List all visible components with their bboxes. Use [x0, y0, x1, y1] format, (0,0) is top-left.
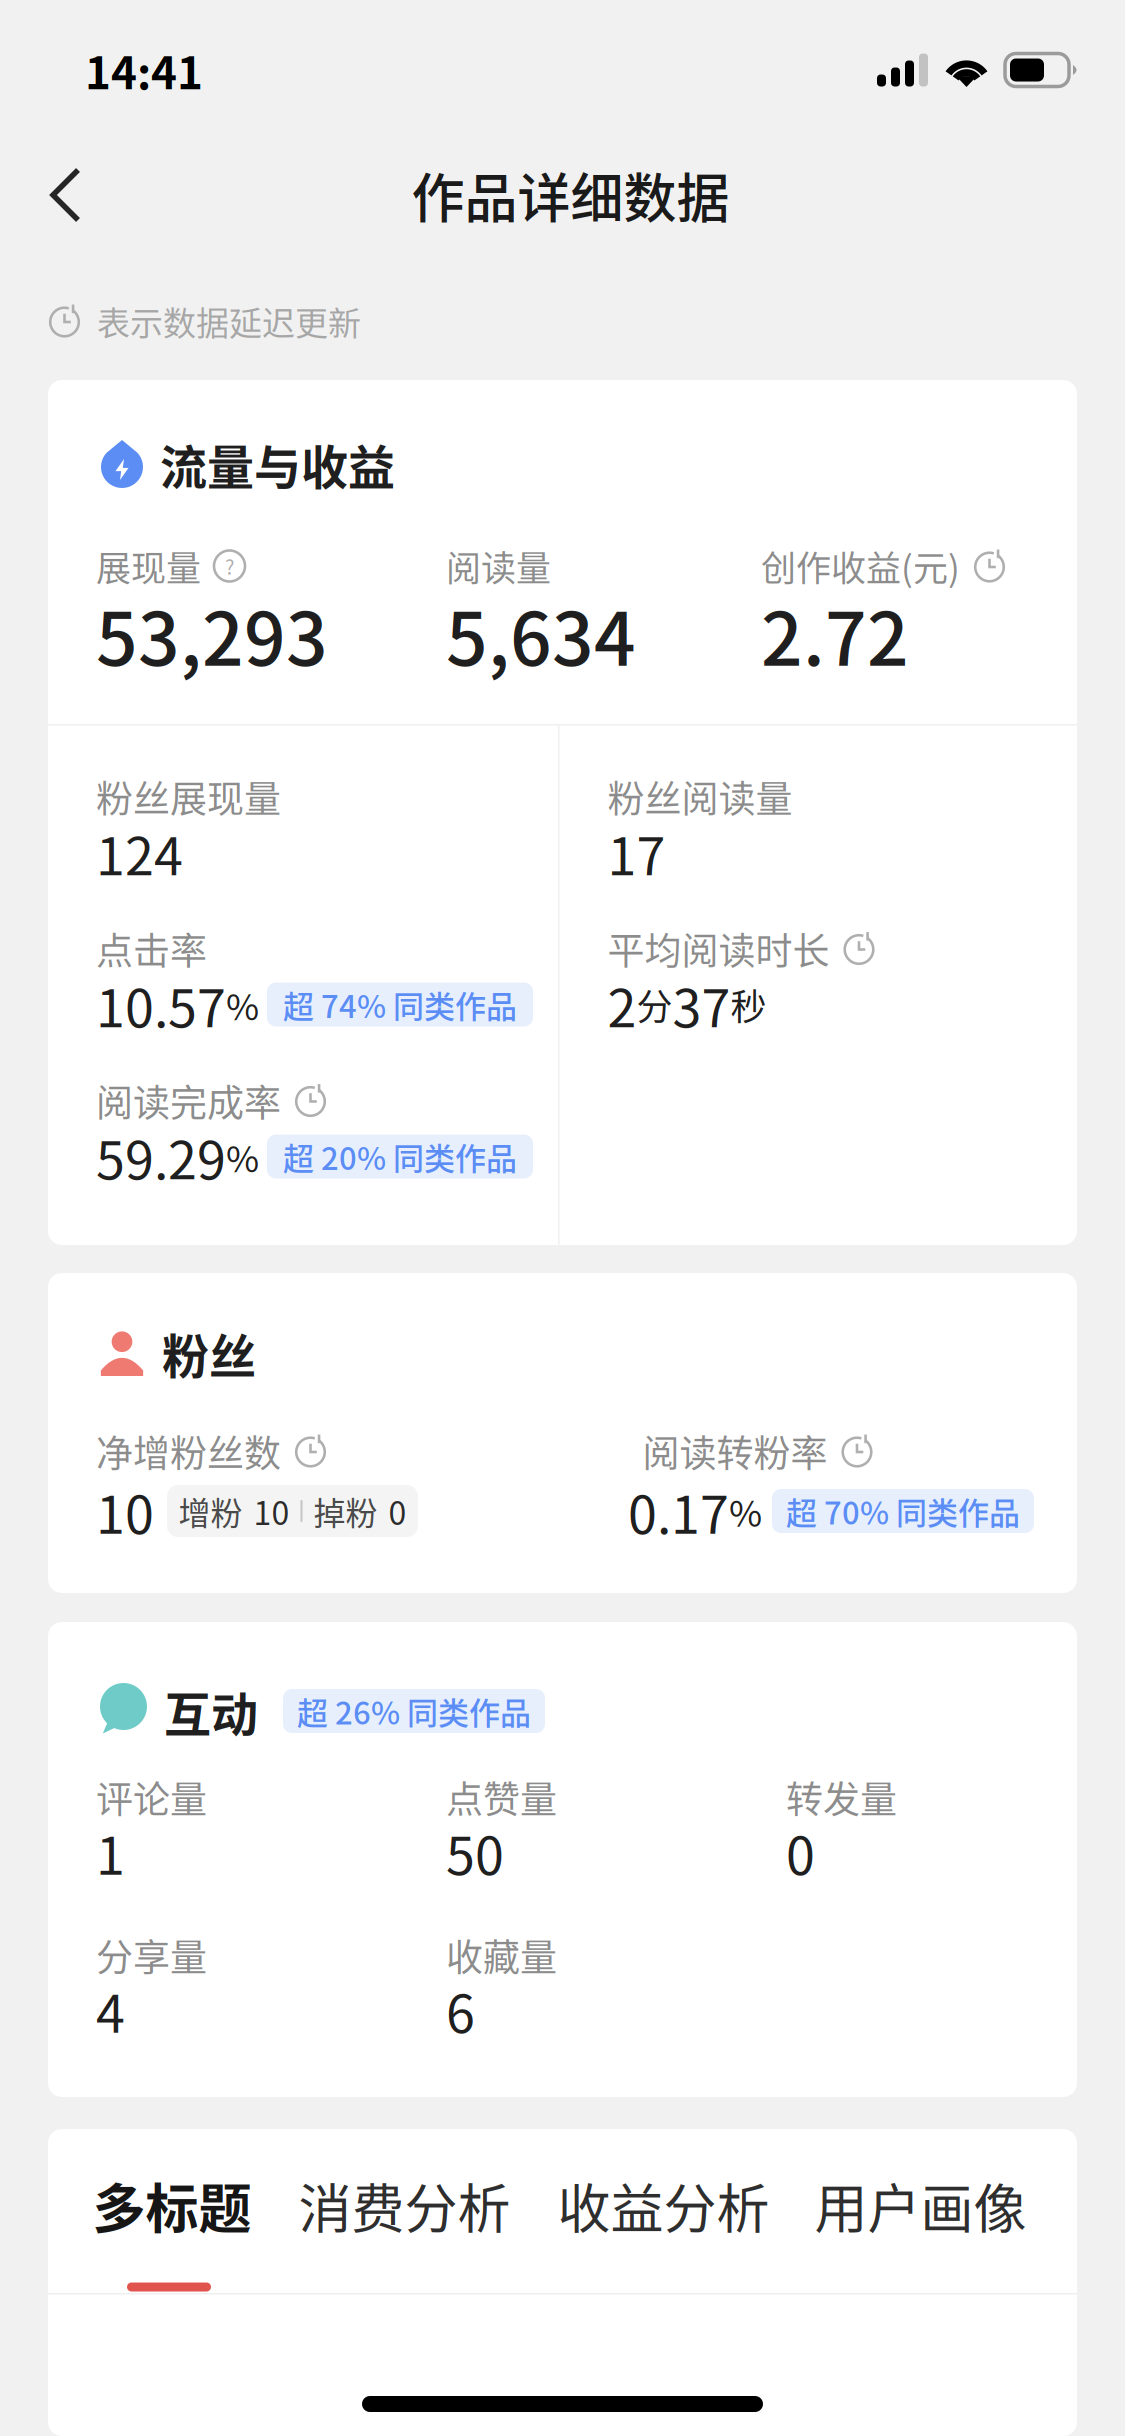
staticText: 10: [253, 1488, 289, 1534]
staticText: 掉粉: [313, 1488, 377, 1534]
staticText: 用户画像: [814, 2167, 1026, 2244]
staticText: 粉丝: [162, 1319, 256, 1387]
staticText: 0.17: [628, 1473, 729, 1549]
staticText: 表示数据延迟更新: [97, 297, 361, 345]
staticText: 秒: [730, 978, 766, 1030]
staticText: 10.57: [96, 967, 226, 1042]
staticText: 转发量: [786, 1770, 897, 1824]
staticText: 作品详细数据: [411, 157, 729, 233]
staticText: 53,293: [96, 581, 328, 687]
staticText: 创作收益(元): [761, 541, 960, 591]
staticText: 收益分析: [557, 2167, 769, 2244]
staticText: 37: [672, 967, 730, 1042]
button[interactable]: About 展现量: [214, 550, 245, 581]
staticText: 收藏量: [446, 1928, 557, 1982]
button[interactable]: 消费分析: [297, 2173, 556, 2293]
staticText: 点击率: [96, 922, 207, 975]
staticText: 展现量: [96, 541, 201, 591]
staticText: 50: [446, 1814, 504, 1890]
staticText: 124: [96, 815, 183, 890]
button[interactable]: Back: [16, 142, 115, 248]
staticText: 2.72: [761, 581, 909, 687]
staticText: 超 20% 同类作品: [283, 1134, 517, 1179]
staticText: 增粉: [178, 1488, 242, 1534]
button[interactable]: 收益分析: [556, 2173, 813, 2293]
staticText: 阅读量: [446, 541, 551, 591]
button[interactable]: 用户画像: [813, 2173, 1070, 2293]
staticText: 互动: [164, 1677, 258, 1745]
staticText: 59.29: [96, 1119, 226, 1194]
staticText: 超 74% 同类作品: [283, 982, 517, 1027]
button[interactable]: 多标题: [91, 2173, 297, 2293]
staticText: 多标题: [92, 2167, 251, 2244]
staticText: %: [226, 978, 259, 1030]
staticText: 平均阅读时长: [607, 922, 829, 975]
staticText: 超 70% 同类作品: [786, 1489, 1020, 1533]
staticText: 点赞量: [446, 1770, 557, 1824]
staticText: %: [226, 1130, 259, 1182]
staticText: 净增粉丝数: [96, 1424, 281, 1478]
staticText: %: [729, 1485, 762, 1537]
staticText: 1: [96, 1814, 125, 1890]
staticText: 阅读转粉率: [642, 1424, 827, 1478]
staticText: 流量与收益: [160, 430, 395, 498]
staticText: 6: [446, 1972, 475, 2048]
staticText: 4: [96, 1972, 125, 2048]
staticText: 2: [607, 967, 636, 1042]
staticText: 0: [786, 1814, 815, 1890]
staticText: 17: [607, 815, 665, 890]
staticText: 粉丝展现量: [96, 770, 281, 823]
staticText: 分: [636, 978, 672, 1030]
staticText: 超 26% 同类作品: [297, 1689, 531, 1733]
staticText: ?: [225, 551, 234, 580]
staticText: 5,634: [446, 581, 636, 687]
staticText: 14:41: [85, 38, 203, 102]
staticText: 0: [388, 1488, 406, 1534]
staticText: 评论量: [96, 1770, 207, 1824]
staticText: 分享量: [96, 1928, 207, 1982]
staticText: 消费分析: [298, 2167, 510, 2244]
staticText: 10: [96, 1473, 154, 1549]
staticText: 阅读完成率: [96, 1074, 281, 1127]
staticText: 粉丝阅读量: [607, 770, 792, 823]
